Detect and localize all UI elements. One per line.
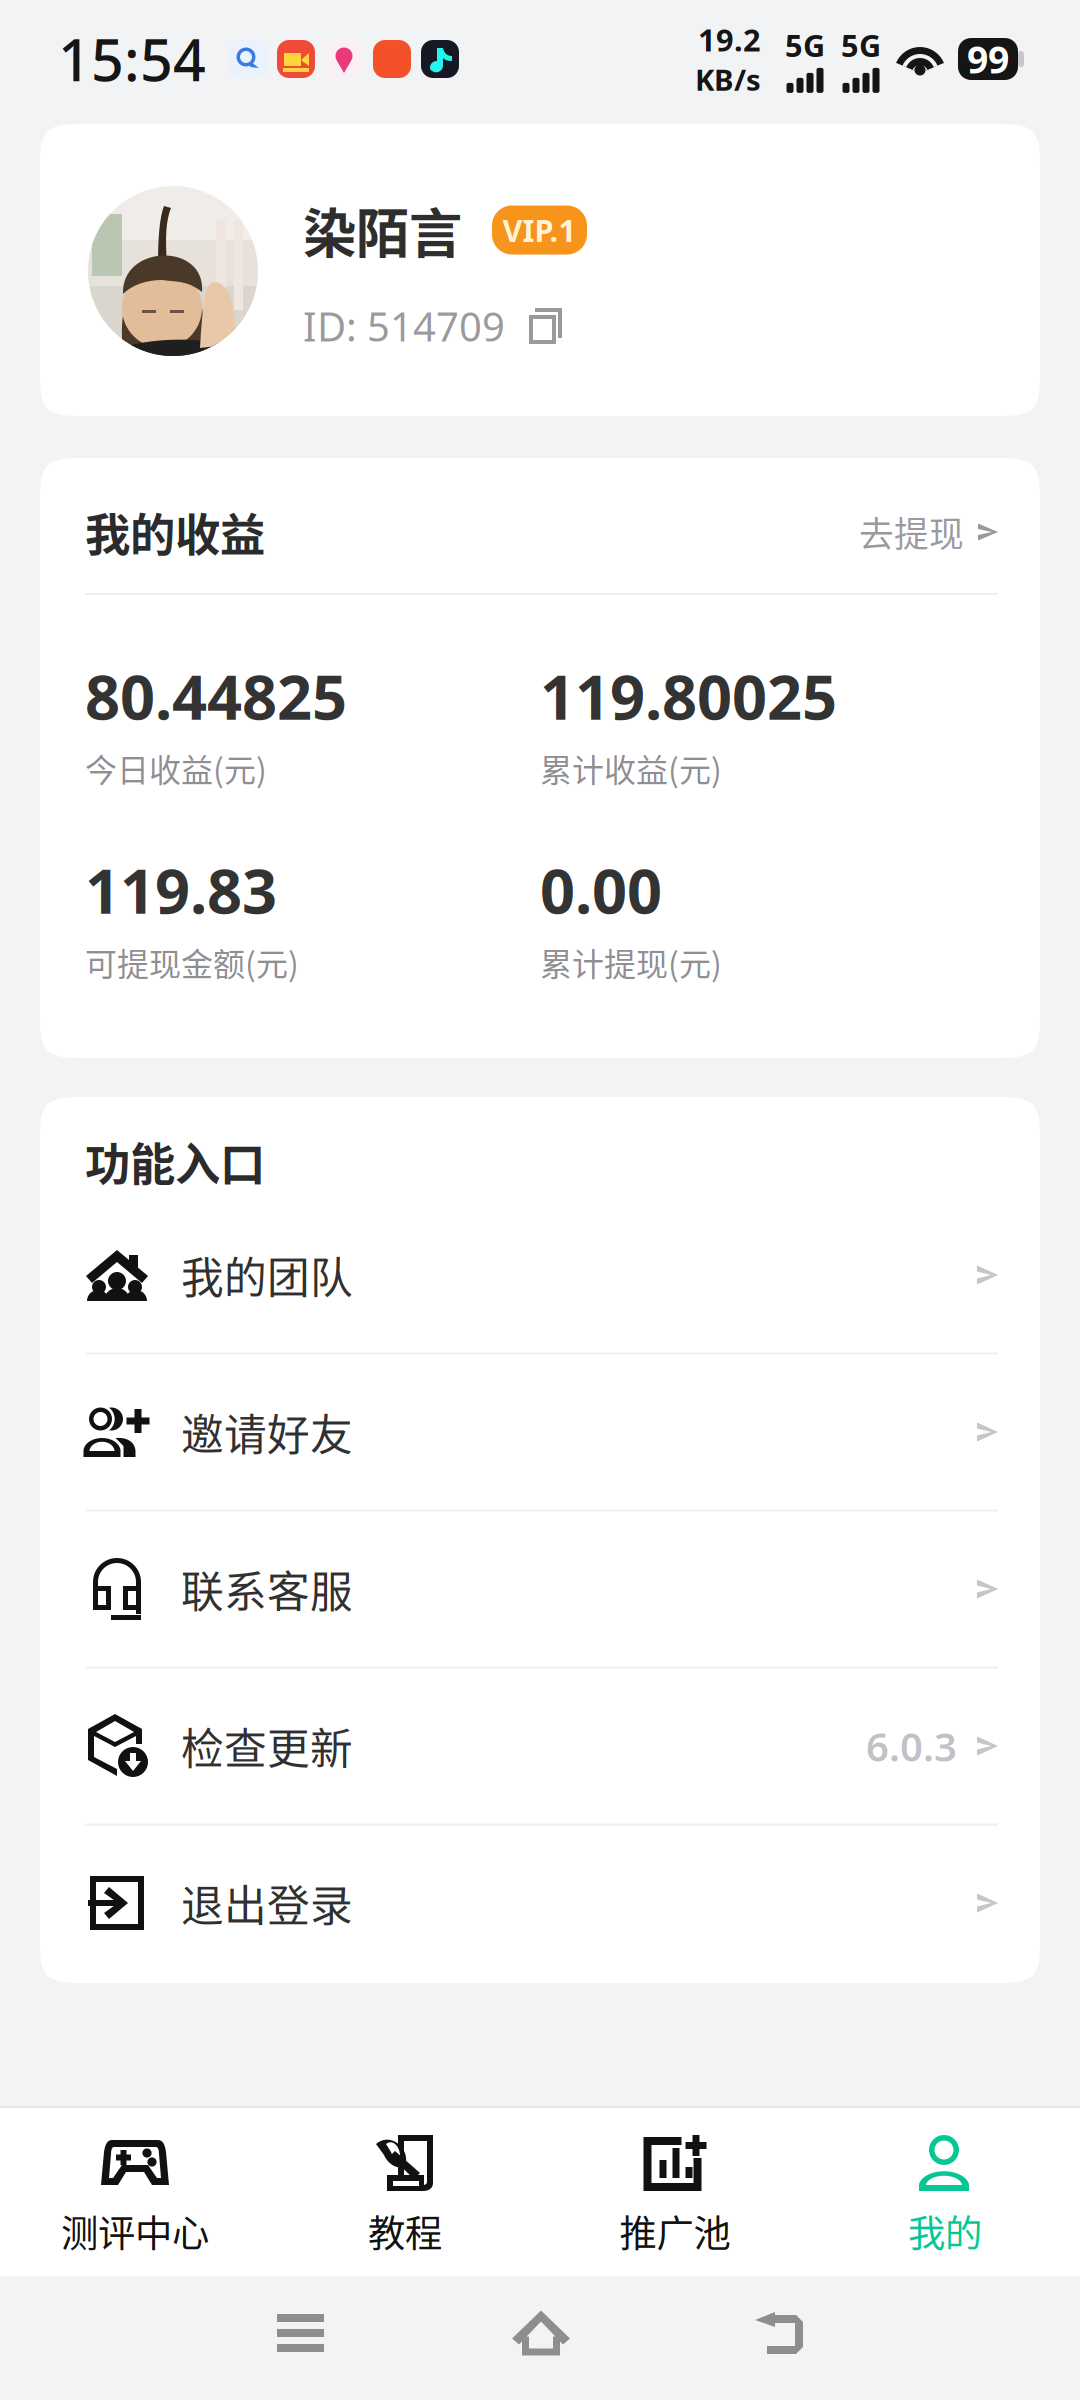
button[interactable]: 教程	[270, 2108, 540, 2276]
button[interactable]: 联系客服	[40, 1511, 1040, 1666]
staticText: 推广池	[619, 2204, 730, 2258]
staticText: 累计收益(元)	[540, 745, 722, 791]
staticText: 染陌言	[303, 191, 462, 269]
button[interactable]: 推广池	[540, 2108, 810, 2276]
staticText: 去提现	[859, 507, 964, 557]
button[interactable]: Home	[478, 2276, 604, 2389]
staticText: 我的团队	[181, 1244, 353, 1306]
button[interactable]: 我的	[810, 2108, 1080, 2276]
staticText: 15:54	[58, 21, 206, 97]
staticText: KB/s	[695, 60, 761, 99]
staticText: 可提现金额(元)	[85, 939, 299, 985]
staticText: 80.44825	[85, 655, 347, 737]
button[interactable]: 检查更新	[40, 1668, 1040, 1823]
staticText: 教程	[368, 2204, 442, 2258]
staticText: 我的	[908, 2204, 982, 2258]
staticText: 邀请好友	[181, 1401, 353, 1463]
staticText: 5G	[841, 25, 881, 65]
staticText: VIP.1	[502, 210, 576, 250]
button[interactable]: 染陌言	[40, 124, 1040, 416]
button[interactable]: Recents	[243, 2280, 358, 2386]
button[interactable]: 邀请好友	[40, 1354, 1040, 1509]
staticText: 19.2	[698, 19, 761, 60]
staticText: 今日收益(元)	[85, 745, 267, 791]
button[interactable]: 去提现	[859, 506, 998, 558]
staticText: 功能入口	[85, 1129, 265, 1194]
staticText: 5G	[785, 25, 825, 65]
staticText: 检查更新	[181, 1715, 353, 1777]
staticText: ID: 514709	[303, 299, 505, 352]
button[interactable]: 我的团队	[40, 1197, 1040, 1352]
staticText: 累计提现(元)	[540, 939, 722, 985]
staticText: 99	[967, 34, 1009, 84]
staticText: 测评中心	[61, 2204, 209, 2258]
staticText: 119.80025	[540, 655, 837, 737]
staticText: 退出登录	[181, 1872, 353, 1934]
button[interactable]: Back	[721, 2278, 837, 2388]
staticText: 119.83	[85, 849, 277, 931]
staticText: 6.0.3	[866, 1719, 957, 1772]
staticText: 我的收益	[85, 499, 265, 565]
staticText: 联系客服	[181, 1558, 353, 1620]
button[interactable]: 测评中心	[0, 2108, 270, 2276]
staticText: 0.00	[540, 849, 662, 931]
button[interactable]: 退出登录	[40, 1825, 1040, 1980]
